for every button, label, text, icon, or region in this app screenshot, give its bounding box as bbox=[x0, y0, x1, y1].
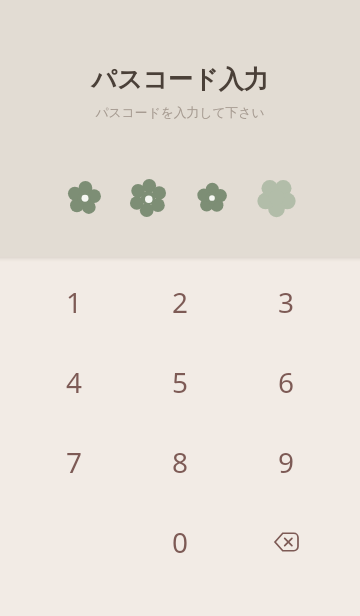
staticText: 9 bbox=[278, 443, 295, 481]
button[interactable]: 3 bbox=[233, 262, 339, 342]
staticText: 8 bbox=[172, 443, 189, 481]
button[interactable]: 1 bbox=[22, 262, 127, 342]
staticText: 3 bbox=[278, 283, 295, 321]
staticText: パスコード入力 bbox=[91, 64, 269, 95]
button[interactable]: 6 bbox=[233, 342, 339, 422]
staticText: 4 bbox=[66, 363, 83, 401]
staticText: パスコードを入力して下さい bbox=[95, 105, 265, 121]
staticText: 2 bbox=[172, 283, 189, 321]
button[interactable]: 4 bbox=[22, 342, 127, 422]
button[interactable]: 2 bbox=[127, 262, 233, 342]
staticText: 0 bbox=[172, 523, 189, 561]
button[interactable]: Delete bbox=[233, 502, 339, 582]
button[interactable]: 5 bbox=[127, 342, 233, 422]
button[interactable]: 0 bbox=[127, 502, 233, 582]
button[interactable]: 8 bbox=[127, 422, 233, 502]
staticText: 6 bbox=[278, 363, 295, 401]
staticText: 1 bbox=[66, 283, 83, 321]
button[interactable]: 9 bbox=[233, 422, 339, 502]
staticText: 5 bbox=[172, 363, 189, 401]
staticText: 7 bbox=[66, 443, 83, 481]
button[interactable]: 7 bbox=[22, 422, 127, 502]
